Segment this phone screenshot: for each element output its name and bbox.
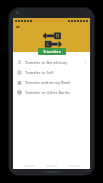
staticText: Transfers (43, 49, 61, 54)
staticText: Transfer to Other Banks (25, 90, 70, 95)
staticText: Transfer to Self (25, 70, 54, 75)
staticText: Transfer to Beneficiary (25, 60, 68, 65)
button[interactable]: Back (15, 24, 21, 30)
button[interactable]: Transfer to Self (13, 67, 90, 77)
staticText: Transfer within my Bank (25, 80, 71, 85)
button[interactable]: Transfer within my Bank (13, 77, 90, 87)
button[interactable]: Transfer to Other Banks (13, 87, 90, 97)
button[interactable]: Transfers (38, 48, 66, 55)
button[interactable]: Transfer to Beneficiary (13, 57, 90, 67)
